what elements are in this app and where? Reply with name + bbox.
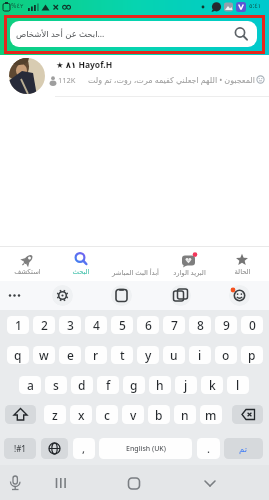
button[interactable] bbox=[228, 284, 251, 307]
button[interactable]: l bbox=[227, 376, 249, 394]
staticText: 112K bbox=[58, 75, 76, 85]
button[interactable] bbox=[169, 284, 192, 307]
button[interactable]: 6 bbox=[137, 316, 159, 334]
staticText: p bbox=[248, 347, 256, 363]
button[interactable]: m bbox=[200, 405, 222, 424]
button[interactable]: x bbox=[70, 405, 92, 424]
button[interactable]: c bbox=[96, 405, 118, 424]
button[interactable]: u bbox=[163, 346, 185, 364]
staticText: 8 bbox=[197, 317, 204, 333]
staticText: g bbox=[130, 377, 138, 393]
staticText: 5 bbox=[119, 317, 126, 333]
staticText: x bbox=[78, 407, 85, 423]
button[interactable]: أبدأ البث المباشر bbox=[108, 246, 162, 281]
staticText: d bbox=[78, 377, 86, 393]
staticText: 3 bbox=[67, 317, 74, 333]
button[interactable] bbox=[50, 473, 72, 495]
staticText: z bbox=[52, 407, 58, 423]
button[interactable]: 5 bbox=[111, 316, 133, 334]
staticText: 4 bbox=[93, 317, 100, 333]
button[interactable]: r bbox=[85, 346, 107, 364]
button[interactable] bbox=[4, 473, 26, 495]
button[interactable]: w bbox=[33, 346, 55, 364]
staticText: !#1 bbox=[14, 443, 26, 454]
button[interactable]: 7 bbox=[163, 316, 185, 334]
button[interactable]: f bbox=[97, 376, 119, 394]
staticText: English (UK) bbox=[126, 444, 166, 454]
button[interactable]: j bbox=[175, 376, 197, 394]
staticText: v bbox=[130, 407, 137, 423]
button[interactable]: البريد الوارد bbox=[162, 246, 216, 281]
button[interactable]: البحث bbox=[54, 246, 108, 281]
button[interactable]: h bbox=[149, 376, 171, 394]
staticText: 9 bbox=[223, 317, 230, 333]
button[interactable]: . bbox=[197, 438, 220, 459]
button[interactable]: y bbox=[137, 346, 159, 364]
button[interactable] bbox=[51, 284, 74, 307]
button[interactable]: t bbox=[111, 346, 133, 364]
button[interactable]: 3 bbox=[59, 316, 81, 334]
staticText: 0 bbox=[249, 317, 256, 333]
staticText: , bbox=[82, 441, 86, 456]
staticText: m bbox=[205, 407, 217, 423]
button[interactable]: !#1 bbox=[4, 438, 36, 459]
button[interactable]: 1 bbox=[7, 316, 29, 334]
button[interactable]: الحالة bbox=[215, 246, 269, 281]
button[interactable]: n bbox=[174, 405, 196, 424]
staticText: r bbox=[93, 347, 99, 363]
button[interactable] bbox=[232, 405, 263, 424]
button[interactable] bbox=[3, 284, 26, 307]
staticText: w bbox=[39, 347, 49, 363]
staticText: c bbox=[104, 407, 110, 423]
button[interactable] bbox=[110, 284, 133, 307]
button[interactable] bbox=[5, 405, 36, 424]
staticText: 1 bbox=[15, 317, 22, 333]
staticText: تم bbox=[239, 444, 248, 454]
button[interactable]: ★ ٨١ Hayof.H bbox=[0, 55, 269, 97]
button[interactable] bbox=[41, 438, 68, 459]
button[interactable]: 8 bbox=[189, 316, 211, 334]
staticText: h bbox=[156, 377, 164, 393]
button[interactable]: v bbox=[122, 405, 144, 424]
button[interactable]: English (UK) bbox=[99, 438, 192, 459]
button[interactable]: z bbox=[44, 405, 66, 424]
staticText: y bbox=[145, 347, 152, 363]
button[interactable]: d bbox=[71, 376, 93, 394]
staticText: استكشف bbox=[14, 268, 41, 276]
staticText: البحث bbox=[72, 268, 90, 276]
button[interactable]: 4 bbox=[85, 316, 107, 334]
button[interactable]: 9 bbox=[215, 316, 237, 334]
staticText: o bbox=[222, 347, 230, 363]
staticText: b bbox=[155, 407, 163, 423]
staticText: f bbox=[106, 377, 111, 393]
staticText: البريد الوارد bbox=[173, 268, 206, 277]
staticText: k bbox=[209, 377, 216, 393]
button[interactable]: , bbox=[73, 438, 95, 459]
button[interactable]: q bbox=[7, 346, 29, 364]
button[interactable]: p bbox=[241, 346, 263, 364]
staticText: l bbox=[236, 377, 240, 393]
button[interactable]: i bbox=[189, 346, 211, 364]
staticText: e bbox=[67, 347, 74, 363]
button[interactable]: 2 bbox=[33, 316, 55, 334]
button[interactable]: تم bbox=[224, 438, 263, 459]
staticText: j bbox=[184, 377, 188, 393]
button[interactable]: b bbox=[148, 405, 170, 424]
staticText: المعجبون • اللهم اجعلني كفيمه مرت، روت، … bbox=[76, 74, 255, 85]
button[interactable] bbox=[123, 473, 145, 495]
button[interactable]: s bbox=[45, 376, 67, 394]
button[interactable] bbox=[199, 473, 221, 495]
staticText: s bbox=[53, 377, 59, 393]
button[interactable]: k bbox=[201, 376, 223, 394]
button[interactable]: ابحث عن أحد الأشخاص... bbox=[10, 21, 257, 47]
button[interactable]: g bbox=[123, 376, 145, 394]
button[interactable]: 0 bbox=[241, 316, 263, 334]
button[interactable]: a bbox=[19, 376, 41, 394]
staticText: ٥:٤١ bbox=[249, 1, 262, 10]
button[interactable]: o bbox=[215, 346, 237, 364]
button[interactable]: استكشف bbox=[0, 246, 54, 281]
staticText: n bbox=[181, 407, 189, 423]
staticText: أبدأ البث المباشر bbox=[112, 268, 159, 277]
button[interactable]: e bbox=[59, 346, 81, 364]
staticText: t bbox=[120, 347, 125, 363]
